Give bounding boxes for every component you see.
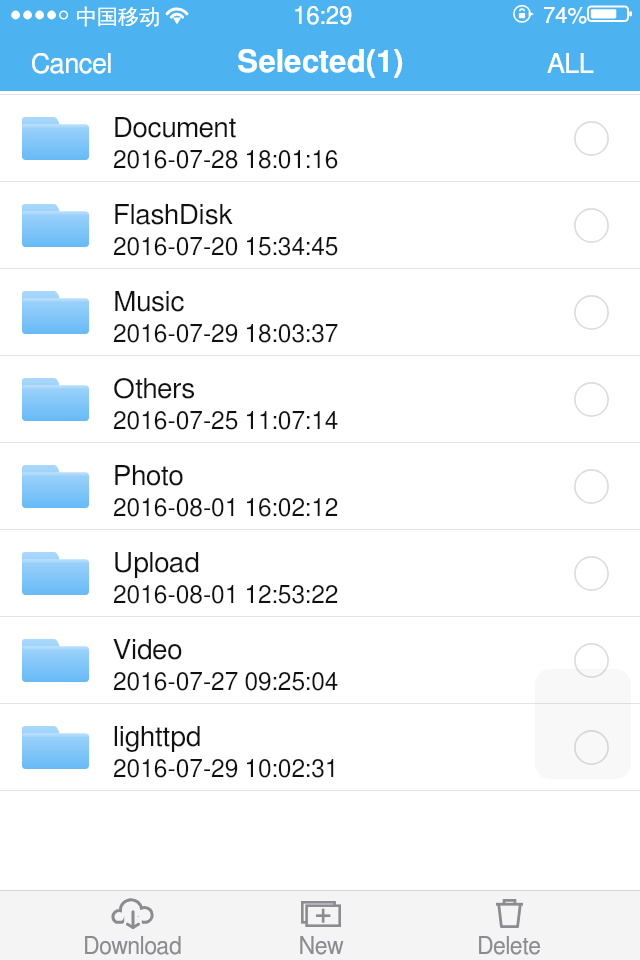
- staticText: 16:29: [293, 5, 353, 29]
- button[interactable]: Select all: [533, 42, 609, 87]
- button[interactable]: lighttpd: [0, 704, 640, 791]
- staticText: Upload: [113, 550, 200, 578]
- staticText: 中国移动: [76, 4, 160, 30]
- button[interactable]: Select lighttpd: [559, 715, 623, 779]
- staticText: 2016-08-01 16:02:12: [113, 496, 339, 521]
- staticText: 2016-07-29 16:29:46: [113, 61, 339, 86]
- button[interactable]: Delete: [415, 891, 603, 960]
- button[interactable]: Video: [0, 617, 640, 704]
- staticText: 2016-07-27 09:25:04: [113, 670, 339, 695]
- button[interactable]: New: [227, 891, 415, 960]
- staticText: 2016-07-29 18:03:37: [113, 322, 339, 347]
- staticText: 2016-07-29 10:02:31: [113, 757, 339, 782]
- staticText: Music: [113, 289, 185, 317]
- button[interactable]: Others: [0, 356, 640, 443]
- staticText: 2016-07-20 15:34:45: [113, 235, 339, 260]
- staticText: Download: [83, 936, 182, 959]
- button[interactable]: Select Photo: [559, 454, 623, 518]
- button[interactable]: Select Upload: [559, 541, 623, 605]
- button[interactable]: Select Document: [559, 106, 623, 170]
- staticText: Delete: [477, 936, 541, 959]
- button[interactable]: Cancel: [17, 42, 127, 87]
- button[interactable]: Select Music: [559, 280, 623, 344]
- button[interactable]: Document: [0, 95, 640, 182]
- button[interactable]: Upload: [0, 530, 640, 617]
- staticText: 2016-07-25 11:07:14: [113, 409, 339, 434]
- staticText: 2016-08-01 12:53:22: [113, 583, 339, 608]
- button[interactable]: 34three: [0, 8, 640, 95]
- button[interactable]: Select FlashDisk: [559, 193, 623, 257]
- staticText: Others: [113, 376, 196, 404]
- staticText: New: [298, 936, 344, 959]
- button[interactable]: Download: [38, 891, 227, 960]
- staticText: Selected(1): [237, 47, 404, 78]
- staticText: FlashDisk: [113, 202, 233, 230]
- staticText: 2016-07-28 18:01:16: [113, 148, 339, 173]
- button[interactable]: Select 34three: [559, 19, 623, 83]
- staticText: Document: [113, 115, 237, 143]
- button[interactable]: Music: [0, 269, 640, 356]
- button[interactable]: Photo: [0, 443, 640, 530]
- staticText: 74%: [543, 5, 588, 27]
- staticText: ALL: [547, 51, 595, 78]
- staticText: lighttpd: [113, 724, 202, 752]
- staticText: Photo: [113, 463, 184, 491]
- button[interactable]: Select Others: [559, 367, 623, 431]
- staticText: Cancel: [31, 51, 113, 78]
- button[interactable]: Select Video: [559, 628, 623, 692]
- button[interactable]: FlashDisk: [0, 182, 640, 269]
- staticText: Video: [113, 637, 183, 665]
